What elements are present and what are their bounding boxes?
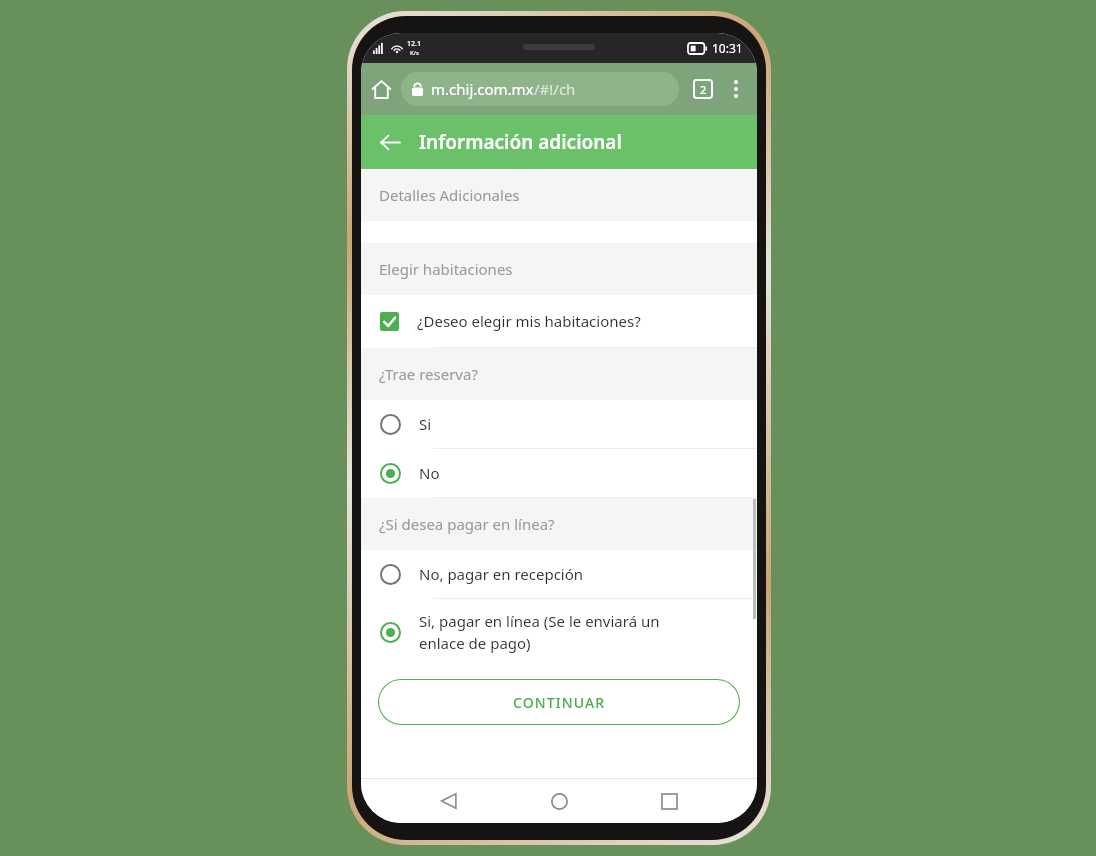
staticText: 2 [700,82,707,97]
button[interactable]: m.chij.com.mx [401,72,679,106]
staticText: m.chij.com.mx [431,79,534,99]
button[interactable]: Home [361,69,401,109]
staticText: ¿Si desea pagar en línea? [379,514,555,534]
staticText: ¿Deseo elegir mis habitaciones? [417,311,641,331]
staticText: Detalles Adicionales [379,185,520,205]
button[interactable]: More options [719,72,753,106]
button[interactable]: CONTINUAR [378,679,740,725]
staticText: CONTINUAR [513,693,606,712]
staticText: 12.1 [407,39,421,49]
button[interactable]: Recent apps [647,779,691,823]
staticText: No, pagar en recepción [419,564,584,584]
staticText: No [419,463,440,483]
staticText: Si, pagar en línea (Se le enviará un enl… [419,611,660,654]
button[interactable]: Back [371,123,409,161]
button[interactable]: Back [427,779,471,823]
staticText: 10:31 [712,40,743,56]
button[interactable]: Home [537,779,581,823]
button[interactable]: No, pagar en recepción [361,550,757,598]
button[interactable]: Si, pagar en línea (Se le enviará un enl… [361,599,757,665]
button[interactable]: Tabs, 2 open [687,73,719,105]
staticText: Elegir habitaciones [379,259,513,279]
button[interactable]: Si [361,400,757,448]
button[interactable]: No [361,449,757,497]
button[interactable]: ¿Deseo elegir mis habitaciones? [361,295,757,347]
staticText: ¿Trae reserva? [379,364,478,384]
staticText: Información adicional [419,129,622,155]
staticText: K/s [410,49,419,57]
staticText: Si [419,414,432,434]
staticText: /#!/ch [534,79,576,99]
